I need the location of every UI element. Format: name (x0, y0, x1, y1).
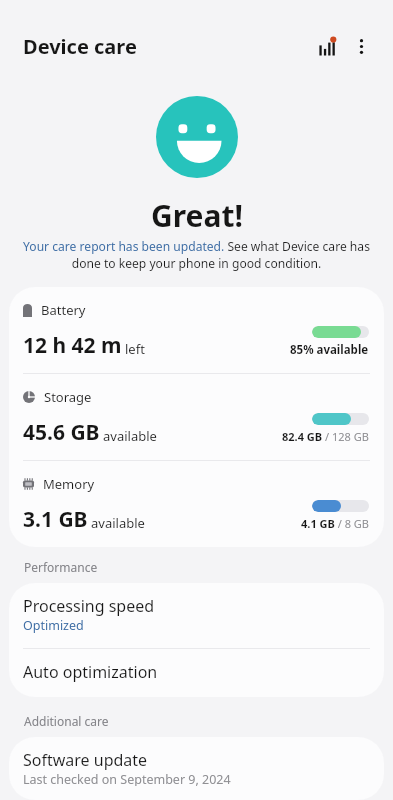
button[interactable]: Battery (9, 287, 384, 373)
staticText: Your care report has been updated. See w… (16, 238, 377, 272)
staticText: left (125, 340, 145, 358)
staticText: 3.1 GB (23, 505, 88, 534)
staticText: Memory (43, 475, 95, 493)
staticText: Optimized (23, 617, 84, 634)
staticText: 4.1 GB / 8 GB (301, 516, 369, 531)
staticText: Performance (24, 559, 98, 575)
button[interactable]: Storage (9, 374, 384, 460)
staticText: Last checked on September 9, 2024 (23, 771, 231, 786)
staticText: 82.4 GB / 128 GB (282, 429, 369, 444)
button[interactable]: Processing speed (9, 583, 384, 648)
staticText: 12 h 42 m (23, 331, 122, 360)
button[interactable]: Usage statistics (301, 26, 341, 66)
staticText: 45.6 GB (23, 418, 100, 447)
staticText: Battery (41, 301, 86, 319)
staticText: Auto optimization (23, 661, 158, 683)
button[interactable]: More options (341, 26, 381, 66)
button[interactable]: Memory (9, 461, 384, 547)
staticText: Great! (151, 195, 243, 236)
staticText: 85% available (290, 342, 369, 358)
staticText: Software update (23, 749, 148, 771)
button[interactable]: Auto optimization (9, 649, 384, 697)
button[interactable]: Software update (9, 737, 384, 800)
staticText: Storage (44, 388, 92, 406)
staticText: Additional care (24, 713, 109, 729)
staticText: Processing speed (23, 595, 155, 617)
staticText: available (91, 514, 145, 532)
staticText: Device care (23, 33, 137, 60)
staticText: available (103, 427, 157, 445)
